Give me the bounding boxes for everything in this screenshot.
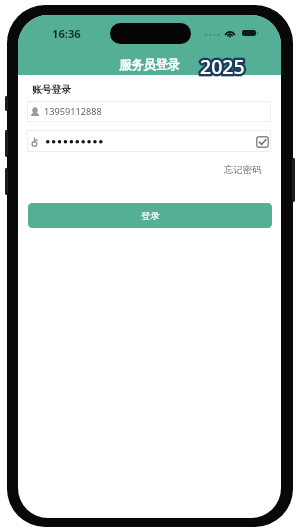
button[interactable]: Remember password xyxy=(256,136,269,148)
staticText: 服务员登录 xyxy=(119,57,180,72)
staticText: 13959112888 xyxy=(44,105,102,118)
staticText: 16:36 xyxy=(52,26,81,41)
staticText: 账号登录 xyxy=(32,84,72,96)
staticText: 2025 xyxy=(200,53,245,80)
staticText: 登录 xyxy=(141,210,160,222)
button[interactable]: Remember password xyxy=(27,130,271,152)
button[interactable]: 忘记密码 xyxy=(224,164,262,176)
button[interactable]: 登录 xyxy=(28,203,272,228)
staticText: 2025 xyxy=(200,53,245,80)
button[interactable]: 13959112888 xyxy=(27,101,271,122)
